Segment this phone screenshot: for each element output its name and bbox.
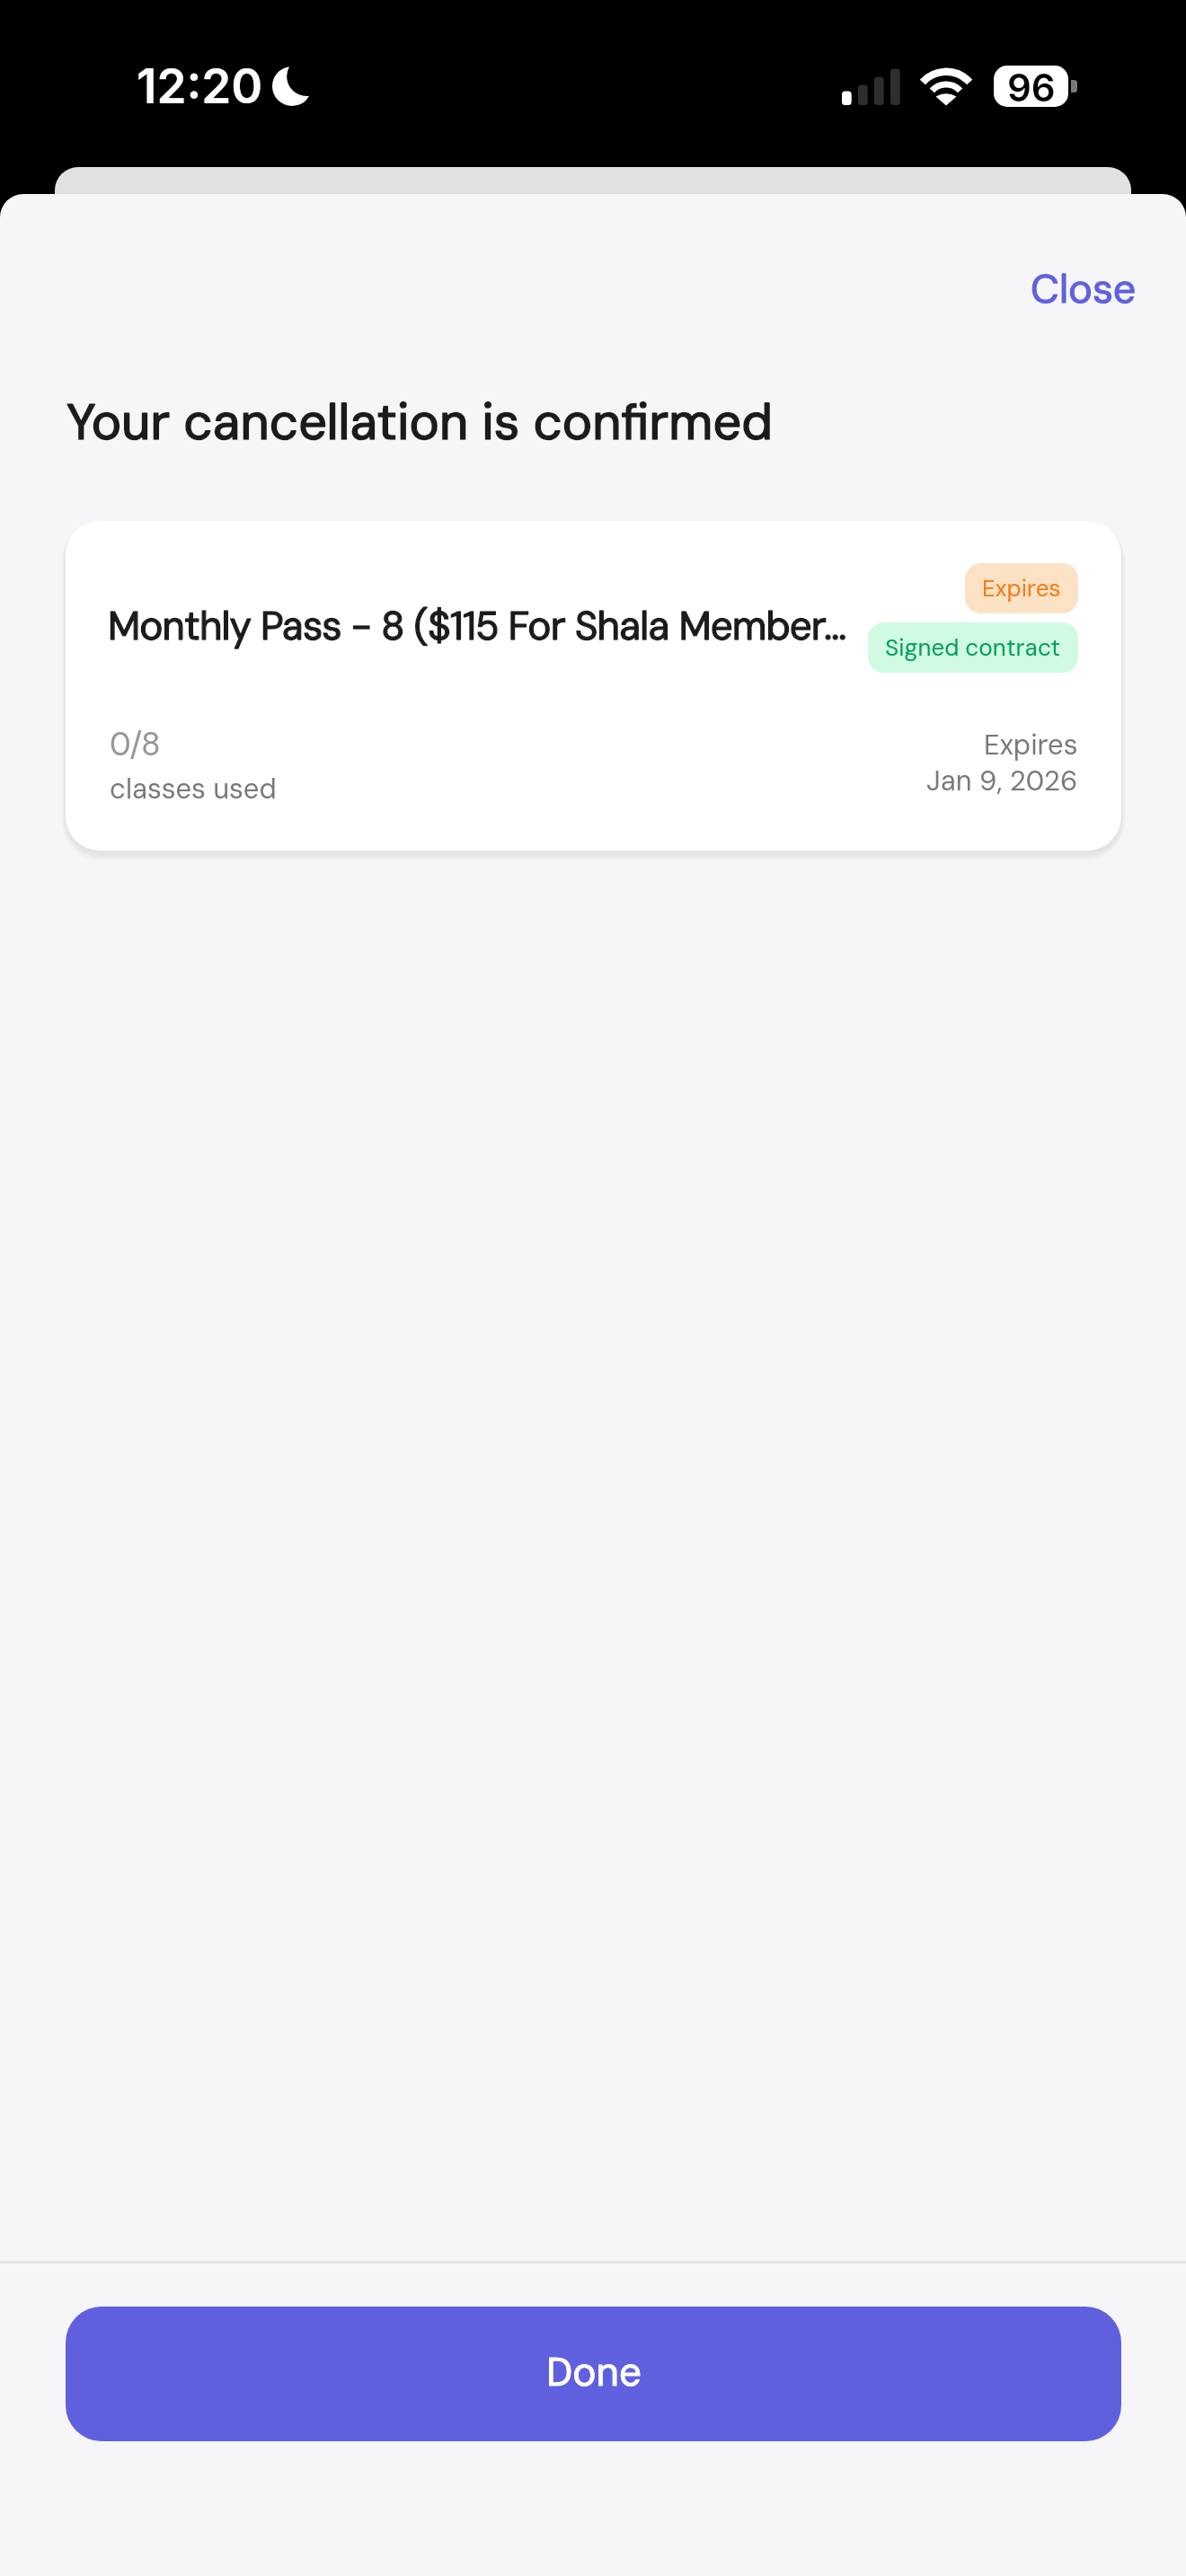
button[interactable]: Monthly Pass - 8 ($115 For Shala Member… bbox=[66, 521, 1121, 851]
staticText: Your cancellation is confirmed bbox=[66, 389, 774, 454]
staticText: Expires bbox=[982, 573, 1061, 604]
staticText: Close bbox=[1031, 262, 1137, 315]
button[interactable]: Done bbox=[66, 2307, 1121, 2441]
other: Wi-Fi bbox=[920, 66, 972, 106]
button[interactable]: Close bbox=[1009, 243, 1158, 335]
staticText: Done bbox=[546, 2346, 642, 2397]
staticText: 96 bbox=[1007, 66, 1056, 106]
staticText: Expires bbox=[984, 727, 1078, 763]
staticText: Jan 9, 2026 bbox=[926, 763, 1078, 798]
staticText: Monthly Pass - 8 ($115 For Shala Member… bbox=[108, 600, 846, 651]
staticText: 0/8 bbox=[110, 723, 161, 765]
other: Battery 96 percent bbox=[994, 66, 1068, 107]
staticText: Close bbox=[1031, 262, 1137, 315]
staticText: Your cancellation is confirmed bbox=[66, 389, 774, 454]
other: Cellular signal bbox=[842, 68, 900, 105]
other: Do not disturb bbox=[271, 66, 313, 106]
staticText: 12:20 bbox=[137, 57, 263, 115]
staticText: Signed contract bbox=[885, 632, 1061, 663]
staticText: classes used bbox=[110, 771, 277, 807]
staticText: Done bbox=[546, 2346, 642, 2397]
staticText: Monthly Pass - 8 ($115 For Shala Member… bbox=[108, 600, 846, 651]
